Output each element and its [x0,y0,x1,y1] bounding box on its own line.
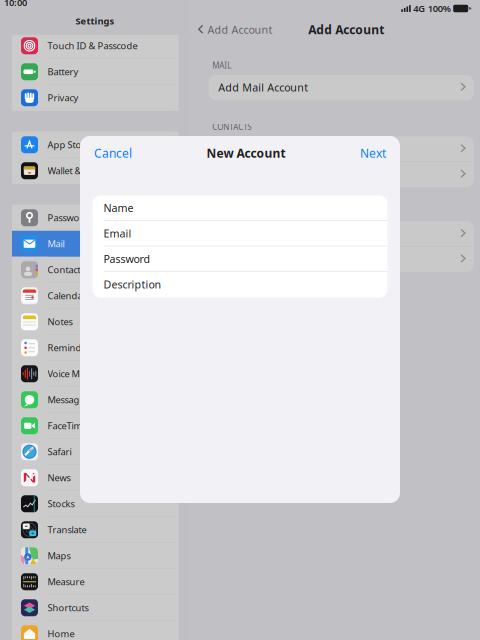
button[interactable]: Shortcuts [12,595,178,621]
staticText: Next [360,145,386,161]
staticText: Touch ID & Passcode [47,40,137,52]
button[interactable]: App Store [12,132,178,158]
staticText: 100% [428,2,451,15]
staticText: Add Mail Account [218,80,308,94]
staticText: Measure [47,576,84,588]
staticText: Calendar [47,290,86,302]
button[interactable]: Passwords [12,205,178,231]
staticText: Stocks [47,498,74,510]
staticText: Password [103,252,150,266]
button[interactable]: Messages [12,387,178,413]
staticText: Voice Memos [47,368,103,380]
staticText: Privacy [47,92,78,104]
button[interactable]: News [12,465,178,491]
button[interactable]: Voice Memos [12,361,178,387]
button[interactable]: Next [352,136,400,170]
button[interactable]: Touch ID & Passcode [12,33,178,59]
staticText: Battery [47,66,78,78]
button[interactable]: Add Mail Account [208,75,474,100]
staticText: Settings [75,15,114,27]
staticText: 4G [413,2,425,15]
button[interactable]: Maps [12,543,178,569]
button[interactable]: Mail [12,231,178,257]
staticText: Messages [47,394,88,406]
staticText: Contacts [47,264,84,276]
button[interactable]: Description [92,272,387,297]
button[interactable]: Outlook.com [208,247,474,272]
staticText: CONTACTS [212,122,251,132]
button[interactable]: Add Account [190,17,278,42]
button[interactable]: Notes [12,309,178,335]
button[interactable]: Password [92,246,387,272]
button[interactable]: Measure [12,569,178,595]
staticText: Passwords [47,212,93,224]
button[interactable]: iCloud [208,136,474,162]
button[interactable]: Contacts [12,257,178,283]
staticText: Add Account [207,22,272,37]
button[interactable]: Name [92,195,387,221]
button[interactable]: Email [92,221,387,246]
button[interactable]: Stocks [12,491,178,517]
staticText: Home [47,628,74,640]
staticText: News [47,472,70,484]
button[interactable]: FaceTime [12,413,178,439]
button[interactable]: Battery [12,59,178,85]
staticText: Description [103,277,161,291]
staticText: 10:00 [4,0,27,9]
staticText: Email [103,226,131,240]
button[interactable]: Translate [12,517,178,543]
staticText: Translate [47,524,86,536]
staticText: Mail [47,238,64,250]
button[interactable]: Wallet & Apple Pay [12,158,178,184]
staticText: Name [103,201,133,215]
button[interactable]: Reminders [12,335,178,361]
staticText: Notes [47,316,72,328]
staticText: Wallet & Apple Pay [47,165,126,177]
button[interactable]: Calendar [12,283,178,309]
staticText: Safari [47,446,71,458]
button[interactable]: Home [12,621,178,640]
button[interactable]: Safari [12,439,178,465]
button[interactable]: Exchange [208,221,474,247]
staticText: Reminders [47,342,94,354]
staticText: Cancel [94,145,132,161]
staticText: MAIL [212,60,231,71]
staticText: New Account [206,145,285,161]
staticText: iCloud [218,142,251,156]
staticText: Maps [47,550,70,562]
button[interactable]: Cancel [80,136,140,170]
staticText: Shortcuts [47,602,88,614]
staticText: FaceTime [47,420,87,432]
button[interactable]: Google [208,162,474,187]
staticText: App Store [47,139,90,151]
staticText: Add Account [308,21,384,37]
button[interactable]: Privacy [12,85,178,111]
